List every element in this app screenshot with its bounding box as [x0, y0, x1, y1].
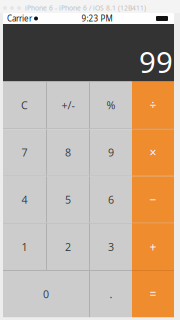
- button[interactable]: ×: [132, 129, 174, 175]
- staticText: 9:23 PM: [81, 13, 112, 24]
- staticText: .: [109, 287, 112, 301]
- staticText: 2: [65, 240, 71, 254]
- button[interactable]: 6: [90, 176, 132, 223]
- button[interactable]: 0: [3, 271, 89, 317]
- button[interactable]: =: [132, 271, 174, 317]
- staticText: 4: [21, 192, 27, 207]
- staticText: 1: [21, 240, 27, 254]
- staticText: 5: [65, 192, 71, 207]
- staticText: %: [106, 98, 115, 112]
- button[interactable]: %: [90, 82, 132, 128]
- staticText: iPhone 6 - iPhone 6 / iOS 8.1 (12B411): [25, 4, 146, 12]
- staticText: +: [149, 239, 156, 255]
- button[interactable]: +/-: [47, 82, 89, 128]
- button[interactable]: 9: [90, 129, 132, 175]
- staticText: ×: [149, 144, 156, 160]
- staticText: 99: [139, 42, 173, 81]
- button[interactable]: 1: [3, 224, 46, 270]
- button[interactable]: 5: [47, 176, 89, 223]
- button[interactable]: 2: [47, 224, 89, 270]
- button[interactable]: 7: [3, 129, 46, 175]
- staticText: 9: [108, 145, 114, 159]
- staticText: 8: [65, 145, 71, 159]
- staticText: Carrier: [7, 13, 32, 24]
- button[interactable]: −: [132, 176, 174, 223]
- staticText: 0: [43, 287, 49, 301]
- staticText: 3: [108, 240, 114, 254]
- button[interactable]: 4: [3, 176, 46, 223]
- button[interactable]: 8: [47, 129, 89, 175]
- staticText: −: [149, 192, 156, 208]
- button[interactable]: 3: [90, 224, 132, 270]
- button[interactable]: ÷: [132, 82, 174, 128]
- button[interactable]: .: [90, 271, 132, 317]
- button[interactable]: +: [132, 224, 174, 270]
- staticText: C: [21, 98, 28, 112]
- staticText: +/-: [61, 98, 74, 112]
- staticText: ÷: [149, 97, 156, 113]
- staticText: 7: [21, 145, 27, 159]
- button[interactable]: C: [3, 82, 46, 128]
- staticText: 6: [108, 192, 114, 207]
- staticText: =: [149, 286, 156, 302]
